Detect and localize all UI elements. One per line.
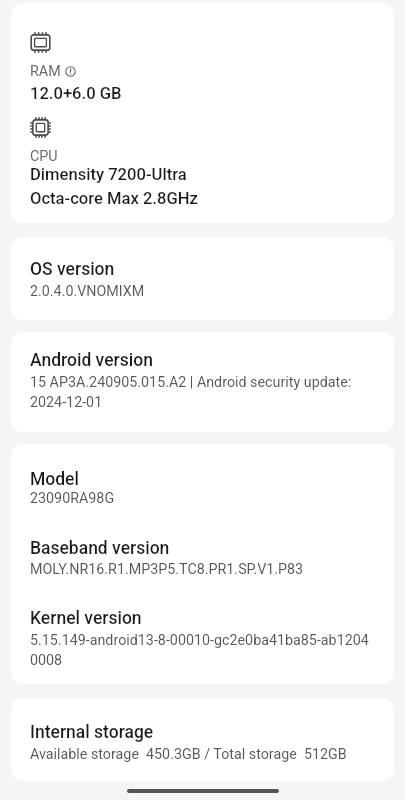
button[interactable]: OS version bbox=[11, 237, 394, 320]
staticText: Android version bbox=[30, 350, 153, 371]
staticText: OS version bbox=[30, 259, 115, 280]
staticText: Baseband version bbox=[30, 538, 170, 559]
staticText: Internal storage bbox=[30, 722, 154, 743]
button[interactable]: About RAM bbox=[65, 66, 76, 77]
staticText: 12.0+6.0 GB bbox=[30, 84, 122, 103]
staticText: MOLY.NR16.R1.MP3P5.TC8.PR1.SP.V1.P83 bbox=[30, 561, 304, 578]
staticText: Dimensity 7200-Ultra Octa-core Max 2.8GH… bbox=[30, 165, 198, 209]
staticText: Available storage 450.3GB / Total storag… bbox=[30, 746, 347, 763]
button[interactable]: Device identifiers bbox=[11, 444, 394, 684]
staticText: CPU bbox=[30, 148, 58, 165]
staticText: 5.15.149-android13-8-00010-gc2e0ba41ba85… bbox=[30, 632, 369, 669]
staticText: Model bbox=[30, 469, 79, 490]
staticText: RAM bbox=[30, 63, 61, 80]
button[interactable]: Hardware bbox=[11, 3, 394, 223]
staticText: Kernel version bbox=[30, 608, 142, 629]
button[interactable]: Android version bbox=[11, 332, 394, 432]
staticText: 2.0.4.0.VNOMIXM bbox=[30, 283, 145, 300]
staticText: 23090RA98G bbox=[30, 490, 115, 507]
button[interactable]: Internal storage bbox=[11, 698, 394, 781]
staticText: 15 AP3A.240905.015.A2 | Android security… bbox=[30, 374, 378, 411]
